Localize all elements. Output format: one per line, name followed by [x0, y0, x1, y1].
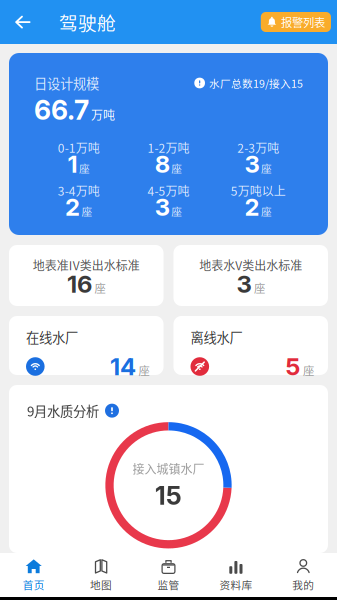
staticText: 4-5万吨 [147, 182, 189, 199]
button[interactable]: 离线水厂 [173, 316, 328, 375]
staticText: 驾驶舱 [59, 8, 116, 35]
button[interactable]: 我的 [270, 550, 337, 600]
staticText: 座 [79, 160, 90, 176]
button[interactable]: 在线水厂 [9, 316, 163, 375]
staticText: 座 [171, 160, 182, 176]
staticText: 9月水质分析 [27, 401, 99, 420]
staticText: 2-3万吨 [237, 139, 279, 156]
staticText: 3-4万吨 [58, 182, 100, 199]
staticText: 座 [303, 362, 314, 378]
button[interactable]: 地表准IV类出水标准 [9, 245, 163, 306]
button[interactable]: 地图 [67, 550, 135, 600]
staticText: 在线水厂 [26, 327, 78, 347]
button[interactable]: 报警列表 [261, 12, 331, 32]
staticText: 地表水V类出水标准 [199, 256, 302, 274]
staticText: 座 [261, 160, 272, 176]
staticText: 座 [82, 203, 93, 219]
staticText: 14 [110, 352, 136, 381]
button[interactable]: 监管 [135, 550, 202, 600]
staticText: 我的 [292, 577, 314, 592]
staticText: 0-1万吨 [58, 139, 100, 156]
button[interactable]: 首页 [0, 550, 67, 600]
staticText: 接入城镇水厂 [132, 460, 204, 477]
staticText: 水厂总数19/接入15 [209, 75, 303, 91]
staticText: 3 [244, 149, 259, 178]
staticText: 监管 [157, 577, 179, 592]
staticText: 座 [94, 280, 105, 296]
staticText: 座 [261, 203, 272, 219]
staticText: 5万吨以上 [231, 182, 286, 199]
staticText: 8 [155, 149, 170, 178]
staticText: 15 [155, 480, 182, 511]
button[interactable]: 地表水V类出水标准 [173, 245, 328, 306]
staticText: 座 [138, 362, 149, 378]
staticText: 座 [254, 280, 265, 296]
staticText: 报警列表 [281, 14, 325, 30]
staticText: 16 [67, 269, 92, 298]
button[interactable]: 资料库 [202, 550, 270, 600]
staticText: 1-2万吨 [147, 139, 189, 156]
button[interactable]: 返回 [7, 0, 39, 44]
staticText: 66.7 [34, 94, 89, 126]
staticText: 2 [244, 192, 259, 221]
staticText: 3 [155, 192, 170, 221]
staticText: 日设计规模 [34, 73, 99, 93]
staticText: 资料库 [219, 577, 252, 592]
staticText: 2 [65, 192, 80, 221]
staticText: 1 [68, 149, 78, 178]
staticText: 座 [171, 203, 182, 219]
staticText: 地表准IV类出水标准 [33, 256, 140, 274]
staticText: 离线水厂 [190, 327, 242, 347]
staticText: 3 [236, 269, 251, 298]
staticText: 万吨 [91, 106, 115, 123]
staticText: 5 [285, 352, 300, 381]
staticText: 地图 [90, 577, 112, 592]
staticText: 首页 [23, 577, 45, 592]
